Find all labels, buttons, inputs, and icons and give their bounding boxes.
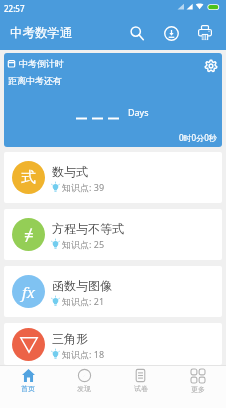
staticText: Days: [128, 106, 149, 118]
staticText: 试卷: [134, 384, 148, 393]
staticText: 中考数学通: [10, 25, 73, 41]
button[interactable]: 试卷: [112, 366, 169, 408]
button[interactable]: fx: [4, 266, 222, 317]
staticText: 知识点: 18: [62, 348, 105, 360]
staticText: 函数与图像: [52, 278, 112, 293]
staticText: 方程与不等式: [52, 221, 124, 236]
button[interactable]: 发现: [56, 366, 112, 408]
button[interactable]: Print: [188, 16, 222, 50]
button[interactable]: 中考倒计时: [4, 53, 222, 147]
staticText: 0时0分0秒: [179, 132, 217, 143]
staticText: 知识点: 25: [62, 238, 105, 250]
staticText: fx: [22, 282, 35, 302]
button[interactable]: 首页: [0, 366, 56, 408]
staticText: 首页: [21, 384, 35, 393]
button[interactable]: Download: [154, 16, 188, 50]
button[interactable]: 式: [4, 152, 222, 203]
staticText: 三角形: [52, 331, 88, 346]
staticText: 中考倒计时: [19, 58, 64, 69]
button[interactable]: ≠: [4, 209, 222, 260]
staticText: 更多: [191, 385, 205, 394]
staticText: 知识点: 39: [62, 181, 105, 193]
staticText: ≠: [24, 223, 34, 246]
staticText: 式: [21, 168, 36, 187]
button[interactable]: 三角形: [4, 323, 222, 365]
staticText: 知识点: 21: [62, 295, 105, 307]
button[interactable]: 更多: [169, 366, 226, 408]
staticText: 发现: [77, 384, 91, 393]
staticText: 22:57: [4, 3, 25, 14]
staticText: 数与式: [52, 164, 88, 179]
button[interactable]: Search: [120, 16, 154, 50]
button[interactable]: Settings: [202, 57, 220, 75]
staticText: 距离中考还有: [8, 75, 62, 86]
